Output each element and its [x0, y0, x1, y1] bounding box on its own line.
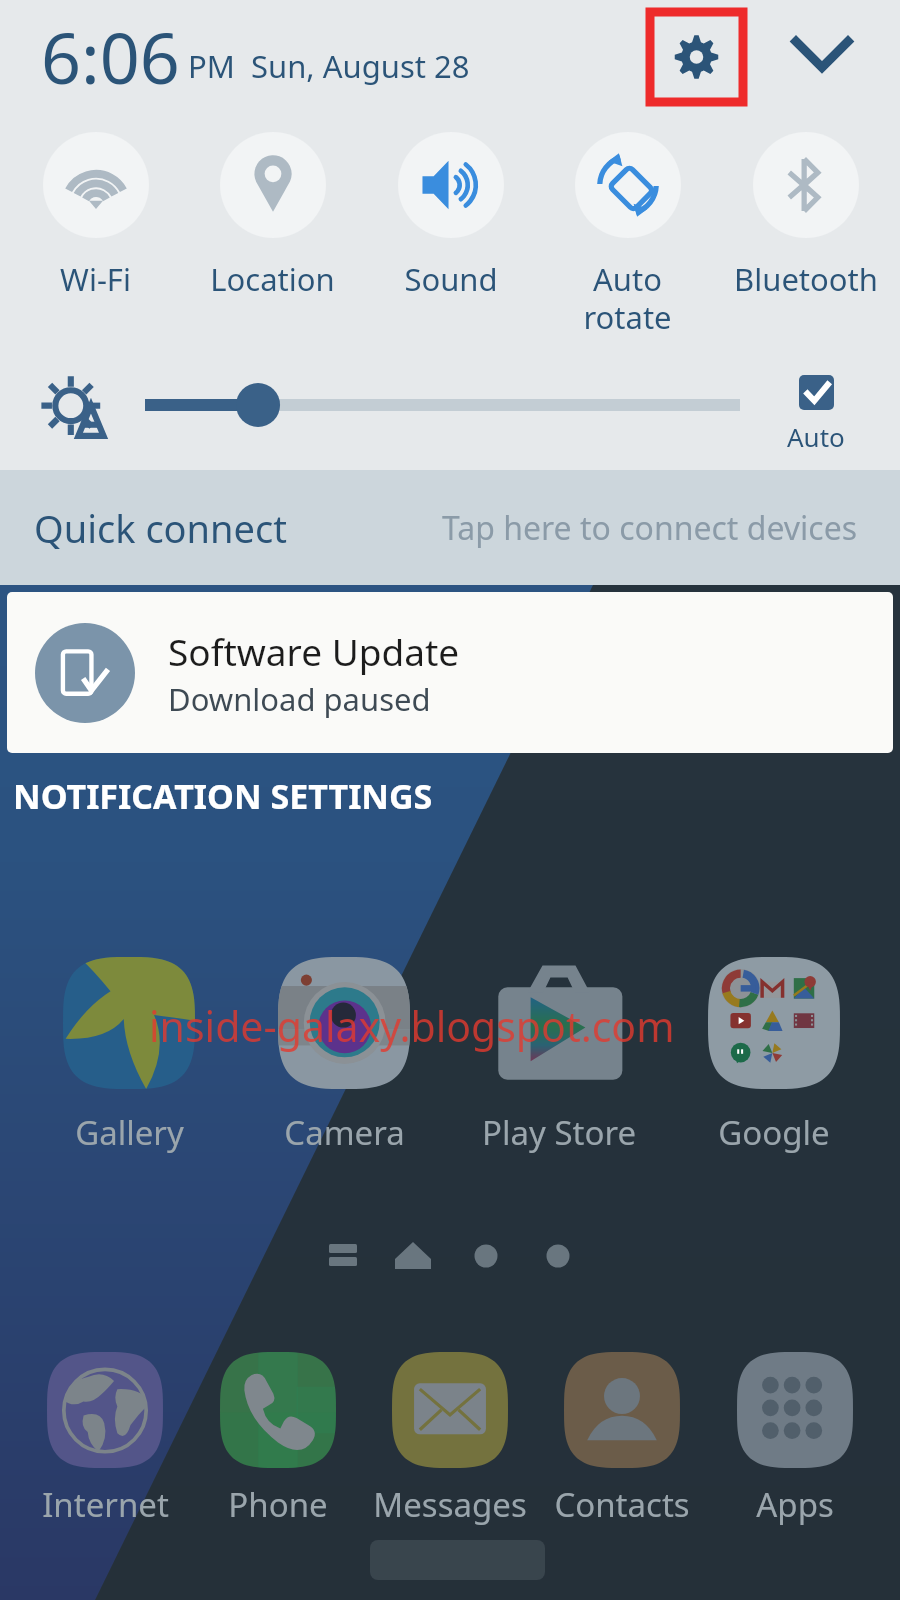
- button[interactable]: Contacts: [524, 1482, 720, 1527]
- button[interactable]: Play Store: [453, 1110, 665, 1155]
- button[interactable]: Location: [190, 118, 355, 300]
- staticText: Play Store: [482, 1110, 636, 1155]
- button[interactable]: NOTIFICATION SETTINGS: [13, 773, 433, 819]
- staticText: Contacts: [554, 1482, 690, 1527]
- button[interactable]: Wi-Fi: [13, 118, 178, 300]
- staticText: PM: [188, 45, 235, 87]
- button[interactable]: Software Update: [7, 592, 893, 753]
- staticText: Apps: [756, 1482, 834, 1527]
- staticText: Wi-Fi: [60, 258, 131, 300]
- staticText: Phone: [228, 1482, 328, 1527]
- staticText: 6:06: [41, 9, 180, 104]
- staticText: Software Update: [168, 626, 460, 676]
- staticText: Messages: [373, 1482, 527, 1527]
- staticText: Gallery: [75, 1110, 184, 1155]
- button[interactable]: Sound: [368, 118, 533, 300]
- staticText: Quick connect: [34, 502, 287, 554]
- button[interactable]: Internet: [7, 1482, 203, 1527]
- staticText: Download paused: [168, 678, 431, 720]
- button[interactable]: Collapse panel: [772, 12, 872, 102]
- button[interactable]: Bluetooth: [723, 118, 888, 300]
- staticText: Sun, August 28: [251, 45, 470, 87]
- button[interactable]: Settings: [650, 12, 743, 102]
- staticText: Auto: [787, 419, 845, 454]
- button[interactable]: Apps: [697, 1482, 893, 1527]
- button[interactable]: Messages: [352, 1482, 548, 1527]
- button[interactable]: Google: [668, 1110, 880, 1155]
- staticText: Internet: [42, 1482, 169, 1527]
- button[interactable]: Phone: [180, 1482, 376, 1527]
- staticText: Camera: [284, 1110, 405, 1155]
- staticText: Bluetooth: [734, 258, 878, 300]
- staticText: Sound: [404, 258, 498, 300]
- button[interactable]: Camera: [238, 1110, 450, 1155]
- button[interactable]: Auto rotate: [545, 118, 710, 338]
- button[interactable]: [130, 370, 755, 440]
- staticText: Tap here to connect devices: [442, 506, 858, 550]
- staticText: Location: [210, 258, 335, 300]
- button[interactable]: Quick connect: [0, 470, 900, 585]
- staticText: Google: [718, 1110, 830, 1155]
- button[interactable]: Auto: [760, 375, 872, 454]
- button[interactable]: Gallery: [23, 1110, 235, 1155]
- staticText: inside-galaxy.blogspot.com: [149, 998, 675, 1054]
- staticText: Auto rotate: [583, 258, 672, 338]
